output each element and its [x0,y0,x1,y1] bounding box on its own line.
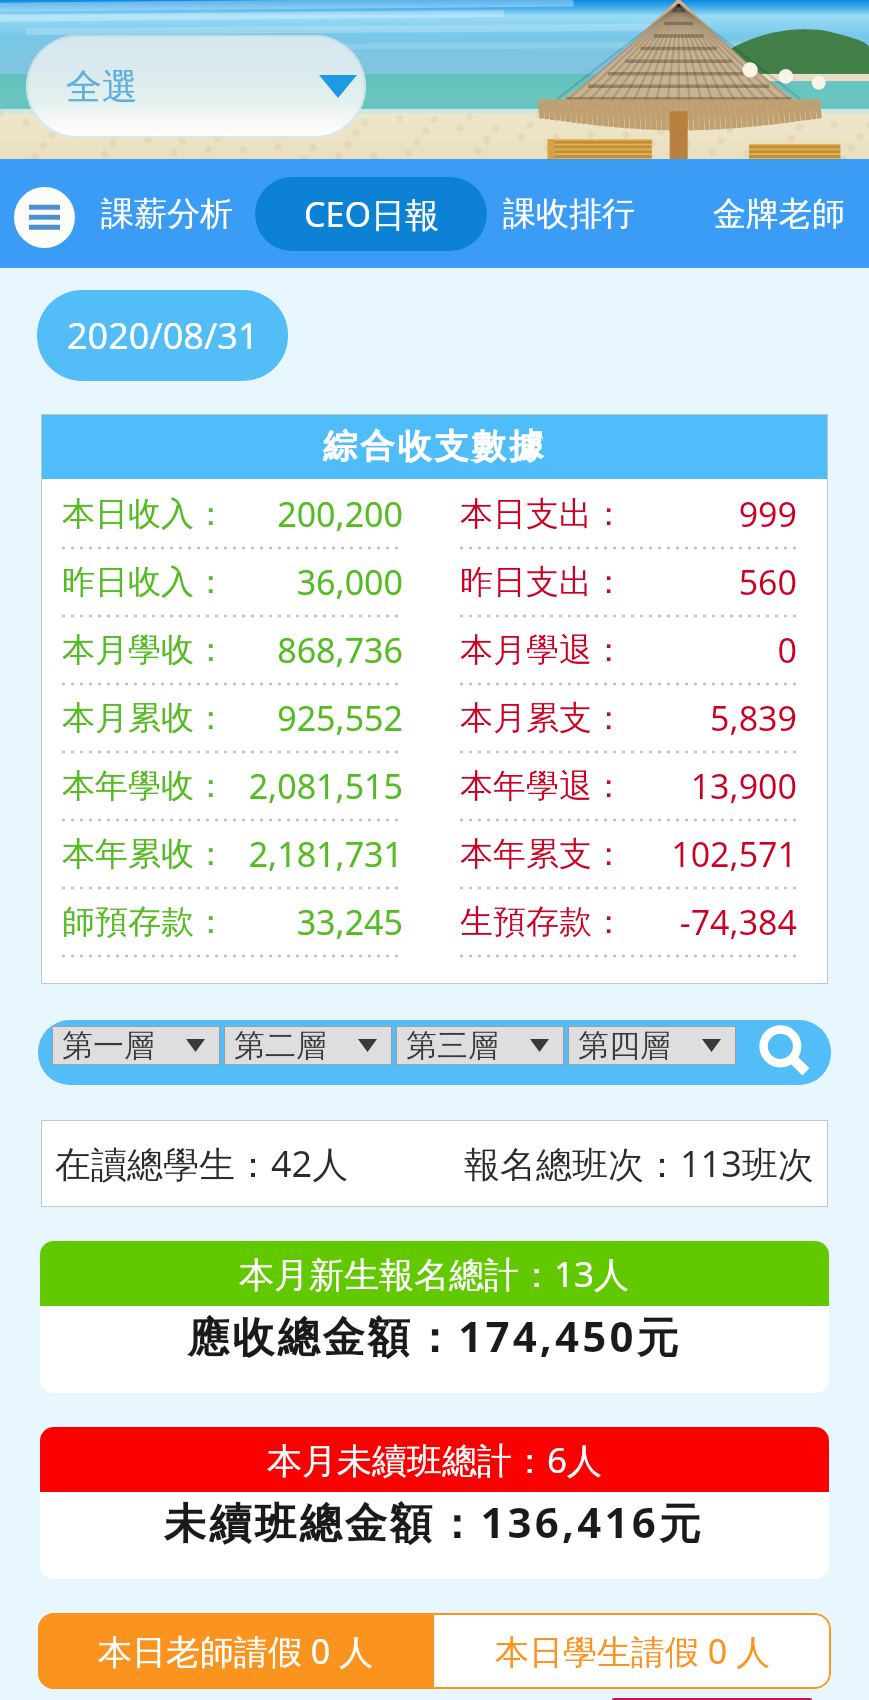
staticText: 本年學收： [62,765,227,807]
staticText: 本年學退： [460,765,625,807]
staticText: 本月累支： [460,697,625,739]
staticText: 200,200 [227,491,403,537]
button[interactable]: 第三層 [396,1026,564,1065]
button[interactable]: CEO日報 [255,177,487,251]
staticText: 本月學收： [62,629,227,671]
staticText: 本日學生請假 0 人 [495,1628,771,1674]
staticText: 本日支出： [460,493,625,535]
button[interactable]: 第四層 [568,1026,736,1065]
staticText: 102,571 [625,831,797,877]
staticText: 560 [625,559,797,605]
staticText: 應收總金額：174,450元 [187,1307,682,1364]
button[interactable]: 第二層 [224,1026,392,1065]
staticText: 未續班總金額：136,416元 [164,1493,705,1550]
staticText: 全選 [66,64,138,109]
staticText: 868,736 [227,627,403,673]
staticText: 昨日支出： [460,561,625,603]
button[interactable]: Menu [14,187,75,248]
staticText: 在讀總學生：42人 [55,1139,349,1188]
staticText: 36,000 [227,559,403,605]
staticText: 課薪分析 [101,193,233,235]
staticText: 課收排行 [503,193,635,235]
staticText: 第二層 [234,1026,327,1065]
staticText: 生預存款： [460,901,625,943]
button[interactable]: 課收排行 [489,177,649,251]
button[interactable]: 本日學生請假 0 人 [434,1613,831,1689]
button[interactable]: 本月未續班總計：6人 [40,1427,829,1579]
staticText: 本日收入： [62,493,227,535]
staticText: 925,552 [227,695,403,741]
staticText: 綜合收支數據 [323,425,547,468]
staticText: 報名總班次：113班次 [464,1139,814,1188]
staticText: 5,839 [625,695,797,741]
button[interactable]: 課薪分析 [87,177,247,251]
staticText: 第一層 [62,1026,155,1065]
button[interactable]: 本日老師請假 0 人 [38,1613,434,1689]
staticText: 0 [625,627,797,673]
staticText: 昨日收入： [62,561,227,603]
staticText: 本月新生報名總計：13人 [239,1250,630,1298]
staticText: -74,384 [625,899,797,945]
staticText: 本年累支： [460,833,625,875]
staticText: 本年累收： [62,833,227,875]
button[interactable]: 2020/08/31 [37,290,288,381]
staticText: 第三層 [406,1026,499,1065]
staticText: 本日老師請假 0 人 [98,1628,374,1674]
button[interactable]: 本月新生報名總計：13人 [40,1241,829,1393]
staticText: 本月累收： [62,697,227,739]
staticText: 金牌老師 [713,193,845,235]
staticText: 2,081,515 [227,763,403,809]
button[interactable]: 金牌老師 [699,177,859,251]
staticText: 第四層 [578,1026,671,1065]
staticText: 本月未續班總計：6人 [267,1436,603,1484]
staticText: 999 [625,491,797,537]
button[interactable] [612,1698,812,1700]
button[interactable]: Search [756,1022,814,1080]
staticText: 本月學退： [460,629,625,671]
staticText: 師預存款： [62,901,227,943]
button[interactable]: 全選 [26,35,366,138]
button[interactable]: 第一層 [52,1026,220,1065]
staticText: CEO日報 [304,191,439,237]
staticText: 33,245 [227,899,403,945]
staticText: 2,181,731 [227,831,403,877]
staticText: 13,900 [625,763,797,809]
staticText: 2020/08/31 [67,311,259,360]
